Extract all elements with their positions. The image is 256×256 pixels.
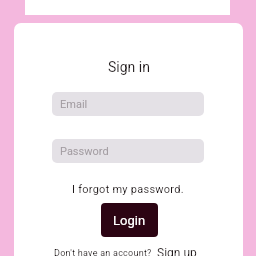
button[interactable]: I forgot my password. — [72, 183, 184, 196]
button[interactable]: Login — [101, 203, 158, 237]
staticText: Don't have an account? — [54, 248, 152, 256]
staticText: Email — [60, 98, 88, 111]
button[interactable]: Email — [52, 92, 204, 116]
button[interactable]: Sign up — [157, 246, 197, 256]
button[interactable]: Password — [52, 139, 204, 163]
staticText: Login — [113, 213, 146, 228]
staticText: Password — [60, 145, 109, 158]
staticText: Sign in — [108, 59, 150, 75]
